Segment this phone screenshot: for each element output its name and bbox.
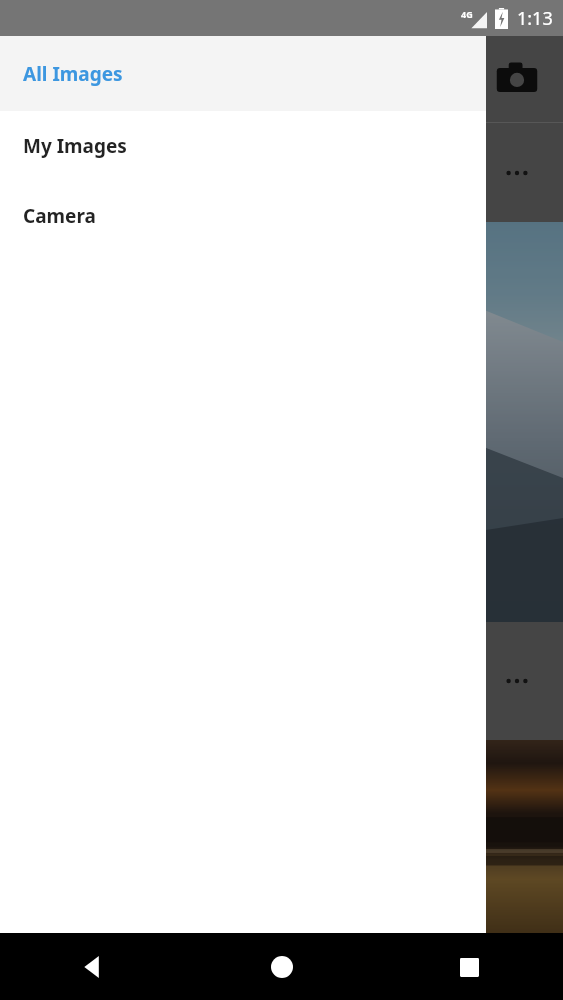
button[interactable]: Camera [494,56,540,102]
button[interactable]: Recent apps [441,939,497,995]
staticText: Camera [23,203,96,229]
staticText: 4G [461,8,473,20]
button[interactable]: Home [254,939,310,995]
button[interactable]: My Images [0,111,486,181]
button[interactable]: More options [497,153,537,193]
button[interactable]: Camera [0,181,486,251]
staticText: My Images [23,133,127,159]
staticText: 1:13 [517,6,553,31]
button[interactable]: Back [66,939,122,995]
button[interactable]: All Images [0,36,486,111]
staticText: All Images [23,61,123,87]
button[interactable]: More options [497,661,537,701]
